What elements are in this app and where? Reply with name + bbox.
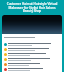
button[interactable] (2, 42, 62, 47)
button[interactable] (2, 62, 62, 67)
button[interactable] (2, 52, 62, 57)
button[interactable] (2, 57, 62, 62)
button[interactable] (2, 67, 62, 72)
button[interactable] (2, 47, 62, 52)
staticText: Customer Haircut Hairstyle Virtual Makeo… (2, 2, 62, 12)
